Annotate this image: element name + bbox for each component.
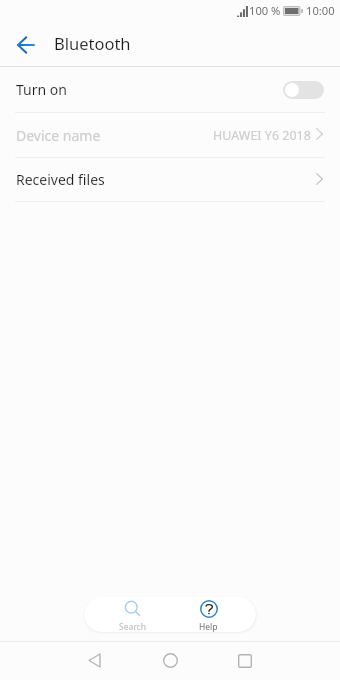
- button[interactable]: Device name: [0, 113, 340, 157]
- staticText: 10:00: [306, 3, 335, 18]
- staticText: 100 %: [249, 3, 281, 18]
- button[interactable]: Search: [101, 597, 164, 632]
- button[interactable]: Turn on: [0, 67, 340, 112]
- button[interactable]: Home: [150, 643, 190, 678]
- button[interactable]: Recent apps: [225, 643, 265, 678]
- button[interactable]: Help: [177, 597, 240, 632]
- staticText: Bluetooth: [54, 32, 131, 54]
- staticText: Turn on: [16, 80, 67, 99]
- button[interactable]: Back: [10, 32, 42, 58]
- button[interactable]: Turn on Bluetooth: [283, 81, 324, 99]
- staticText: Help: [199, 621, 218, 632]
- staticText: Search: [119, 621, 146, 632]
- staticText: Device name: [16, 126, 101, 145]
- staticText: HUAWEI Y6 2018: [213, 127, 311, 144]
- staticText: Received files: [16, 170, 105, 189]
- button[interactable]: Received files: [0, 158, 340, 201]
- button[interactable]: Back: [74, 643, 114, 678]
